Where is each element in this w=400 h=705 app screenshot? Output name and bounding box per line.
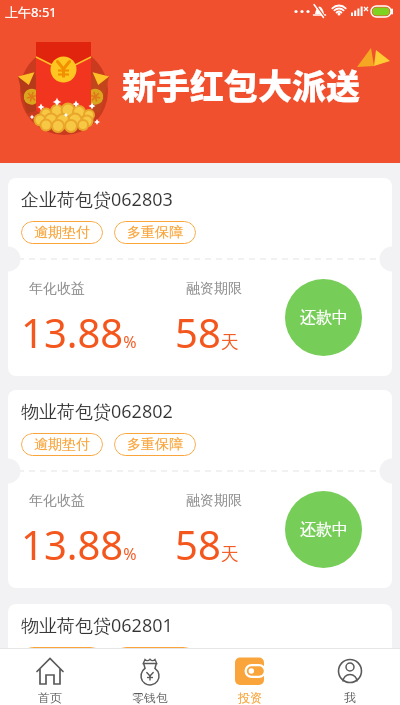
button[interactable]: 物业荷包贷062801 xyxy=(8,604,392,705)
staticText: 13.88% xyxy=(21,305,137,359)
staticText: 58天 xyxy=(175,305,239,359)
staticText: 多重保障 xyxy=(127,436,183,454)
button[interactable]: 逾期垫付 xyxy=(21,647,103,670)
button[interactable]: 上午8:51 xyxy=(0,0,400,163)
staticText: 上午8:51 xyxy=(5,3,57,21)
button[interactable]: 多重保障 xyxy=(114,221,196,244)
staticText: 逾期垫付 xyxy=(34,650,90,668)
button[interactable]: 逾期垫付 xyxy=(21,433,103,456)
staticText: 58天 xyxy=(175,517,239,571)
staticText: 13.88% xyxy=(21,517,137,571)
button[interactable] xyxy=(300,648,400,705)
staticText: 还款中 xyxy=(300,308,348,328)
staticText: 首页 xyxy=(38,690,62,705)
staticText: 新手红包大派送 xyxy=(122,60,360,109)
staticText: 物业荷包贷062802 xyxy=(21,399,173,424)
staticText: 融资期限 xyxy=(186,492,242,510)
button[interactable]: 多重保障 xyxy=(114,433,196,456)
staticText: 年化收益 xyxy=(29,492,85,510)
staticText: 物业荷包贷062801 xyxy=(21,613,173,638)
staticText: 多重保障 xyxy=(127,224,183,242)
button[interactable]: 多重保障 xyxy=(114,647,196,670)
staticText: 零钱包 xyxy=(132,690,168,705)
staticText: 年化收益 xyxy=(29,280,85,298)
button[interactable]: 企业荷包贷062803 xyxy=(8,178,392,376)
staticText: 融资期限 xyxy=(186,280,242,298)
button[interactable] xyxy=(100,648,200,705)
button[interactable] xyxy=(200,648,300,705)
button[interactable] xyxy=(0,648,100,705)
staticText: 企业荷包贷062803 xyxy=(21,187,173,212)
staticText: 投资 xyxy=(238,690,262,705)
staticText: 多重保障 xyxy=(127,650,183,668)
button[interactable]: 逾期垫付 xyxy=(21,221,103,244)
staticText: 我 xyxy=(344,690,356,705)
staticText: 还款中 xyxy=(300,520,348,540)
button[interactable]: 物业荷包贷062802 xyxy=(8,390,392,588)
button[interactable]: 还款中 xyxy=(285,279,362,356)
staticText: 逾期垫付 xyxy=(34,436,90,454)
staticText: 逾期垫付 xyxy=(34,224,90,242)
button[interactable]: 还款中 xyxy=(285,491,362,568)
